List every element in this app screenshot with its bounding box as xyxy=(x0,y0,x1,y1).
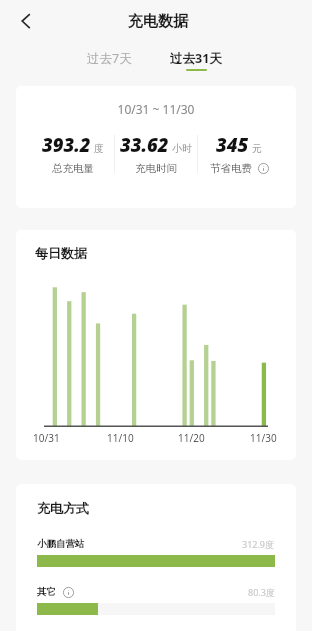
staticText: 11/10 xyxy=(107,431,134,445)
staticText: 总充电量 xyxy=(52,162,94,175)
button[interactable]: 过去31天 xyxy=(170,50,222,71)
staticText: 小时 xyxy=(172,142,192,155)
staticText: 80.3度 xyxy=(248,586,275,598)
staticText: 其它 xyxy=(37,586,56,598)
staticText: 充电时间 xyxy=(135,162,177,175)
staticText: 每日数据 xyxy=(35,245,87,261)
button[interactable]: Back xyxy=(0,0,51,41)
staticText: 11/20 xyxy=(178,431,205,445)
staticText: 11/30 xyxy=(250,431,277,445)
staticText: 10/31 xyxy=(33,431,60,445)
staticText: 过去31天 xyxy=(170,50,222,67)
staticText: 过去7天 xyxy=(87,50,132,67)
staticText: 节省电费 xyxy=(210,162,252,175)
staticText: 度 xyxy=(94,142,104,155)
staticText: 充电数据 xyxy=(128,12,188,31)
staticText: 33.62 xyxy=(120,132,169,157)
button[interactable]: 过去7天 xyxy=(87,50,132,69)
staticText: 小鹏自营站 xyxy=(37,538,85,550)
staticText: 元 xyxy=(252,142,262,155)
staticText: 10/31 ~ 11/30 xyxy=(16,101,296,117)
staticText: 345 xyxy=(216,132,249,157)
staticText: 充电方式 xyxy=(37,500,89,516)
staticText: 312.9度 xyxy=(242,538,275,550)
staticText: 393.2 xyxy=(42,132,91,157)
